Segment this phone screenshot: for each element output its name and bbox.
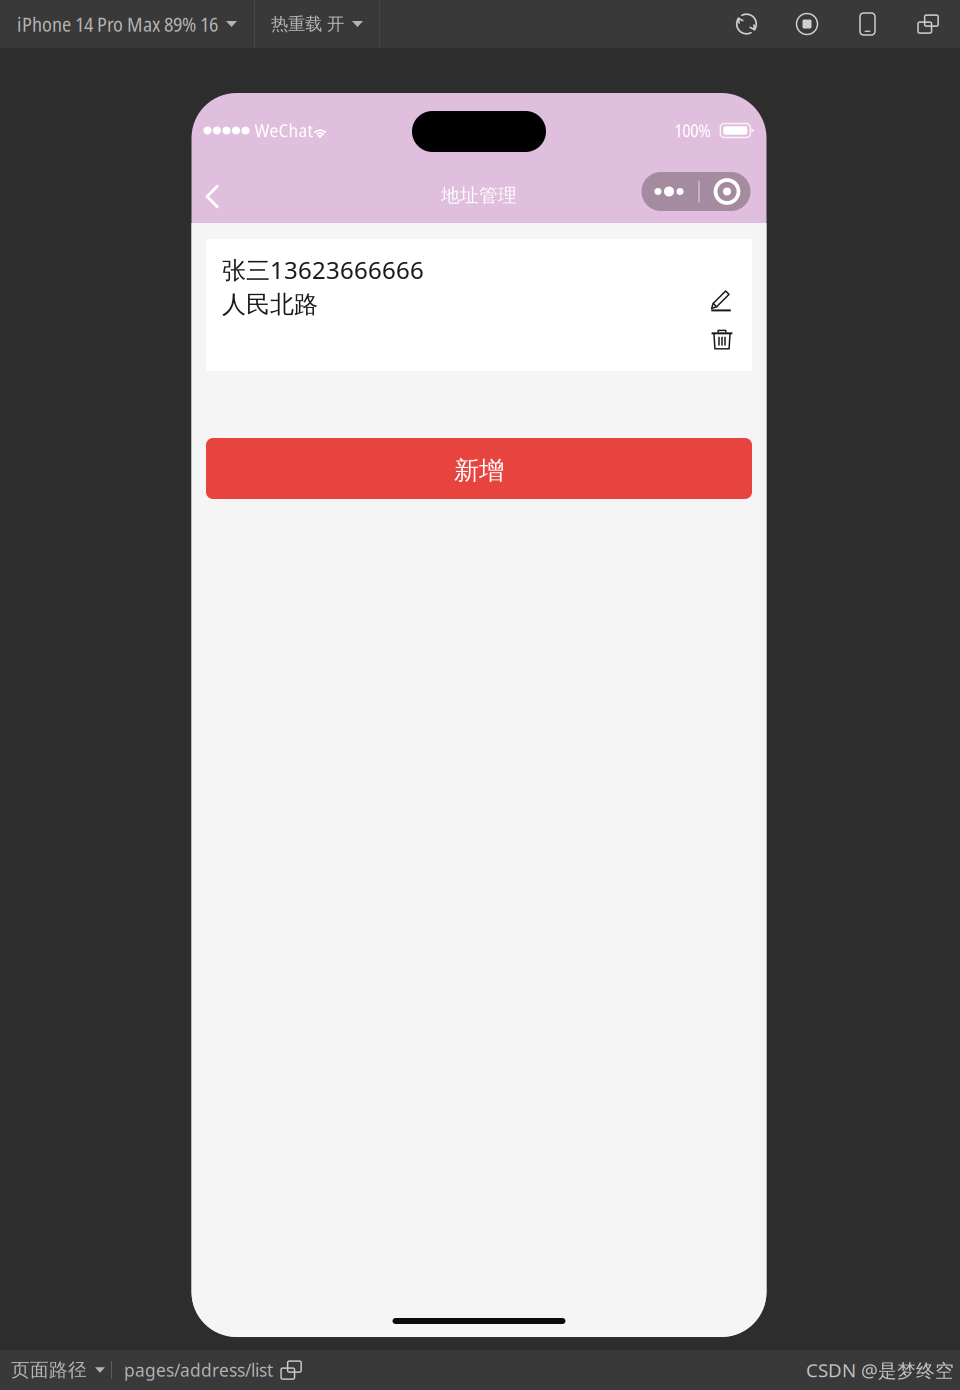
button[interactable]: Preview on device: [852, 0, 882, 48]
button[interactable]: Edit address: [702, 280, 742, 320]
button[interactable]: Copy page path: [279, 1358, 303, 1382]
staticText: 张三13623666666: [222, 254, 424, 286]
staticText: 热重载 开: [271, 13, 344, 35]
button[interactable]: 页面路径: [0, 1350, 111, 1390]
button[interactable]: 张三 13623666666 人民北路: [206, 239, 752, 371]
button[interactable]: Stop: [792, 0, 822, 48]
staticText: 人民北路: [222, 290, 318, 319]
button[interactable]: WeChat menu: [641, 172, 750, 211]
button[interactable]: Delete address: [702, 320, 742, 360]
staticText: 新增: [454, 455, 504, 486]
button[interactable]: Refresh: [731, 0, 761, 48]
button[interactable]: 热重载 开: [255, 0, 379, 48]
button[interactable]: iPhone 14 Pro Max 89% 16: [0, 0, 254, 48]
staticText: 地址管理: [441, 184, 517, 207]
staticText: 100%: [674, 119, 711, 142]
button[interactable]: 新增: [206, 438, 752, 499]
staticText: WeChat: [254, 117, 313, 143]
button[interactable]: Detach simulator window: [913, 0, 943, 48]
staticText: CSDN @是梦终空: [806, 1358, 954, 1382]
button[interactable]: Back: [191, 170, 232, 222]
staticText: iPhone 14 Pro Max 89% 16: [17, 10, 218, 38]
staticText: 页面路径: [11, 1358, 87, 1381]
staticText: pages/address/list: [124, 1358, 273, 1381]
